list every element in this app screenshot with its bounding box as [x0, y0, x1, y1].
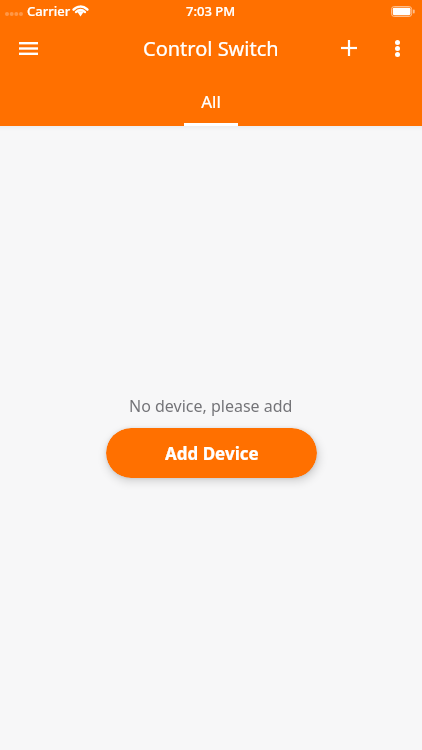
button[interactable]: Add Device [106, 428, 317, 478]
staticText: All [201, 90, 221, 113]
staticText: No device, please add [129, 395, 293, 417]
staticText: Add Device [165, 442, 259, 465]
staticText: Control Switch [143, 35, 279, 62]
staticText: 7:03 PM [186, 2, 236, 20]
button[interactable]: Add device [325, 24, 373, 72]
button[interactable]: All [166, 74, 256, 123]
button[interactable]: More options [373, 24, 421, 72]
staticText: Carrier [27, 2, 71, 20]
button[interactable]: Open navigation menu [4, 24, 52, 72]
